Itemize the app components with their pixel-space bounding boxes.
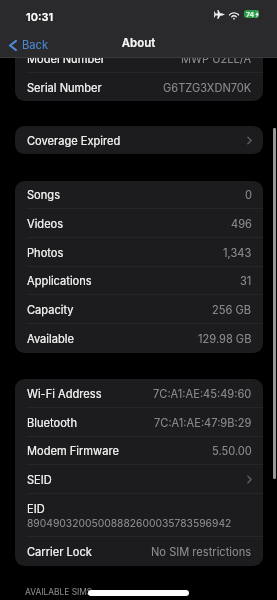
staticText: EID [27, 502, 45, 515]
button[interactable]: Photos [15, 238, 263, 266]
other: Airplane mode [214, 10, 225, 19]
staticText: 7C:A1:AE:45:49:60 [153, 387, 252, 400]
other: Battery 74 percent charging [244, 10, 259, 18]
staticText: SEID [27, 473, 52, 486]
staticText: No SIM restrictions [151, 545, 252, 558]
button[interactable]: SEID [15, 465, 263, 493]
staticText: Model Number [27, 52, 105, 65]
button[interactable]: Applications [15, 267, 263, 294]
staticText: 74 [246, 10, 255, 18]
button[interactable]: Back [6, 34, 55, 56]
button[interactable]: Modem Firmware [15, 437, 263, 464]
staticText: 0 [245, 188, 252, 201]
staticText: Modem Firmware [27, 444, 119, 457]
staticText: AVAILABLE SIMS [25, 587, 93, 597]
button[interactable]: Available [15, 324, 263, 353]
staticText: Coverage Expired [27, 134, 121, 147]
button[interactable]: Model Number [15, 45, 263, 72]
button[interactable]: Songs [15, 181, 263, 208]
staticText: 10:31 [26, 10, 54, 23]
staticText: Serial Number [27, 81, 102, 94]
staticText: 256 GB [212, 303, 252, 316]
staticText: 1,343 [223, 246, 252, 259]
staticText: Applications [27, 274, 92, 287]
staticText: Carrier Lock [27, 545, 92, 558]
staticText: 129.98 GB [198, 332, 252, 345]
other: Wi-Fi [230, 12, 238, 19]
staticText: Videos [27, 217, 64, 230]
button[interactable]: Serial Number [15, 73, 263, 101]
button[interactable]: Videos [15, 209, 263, 237]
button[interactable]: Carrier Lock [15, 537, 263, 566]
staticText: About [0, 36, 277, 50]
staticText: 31 [240, 274, 252, 287]
staticText: Bluetooth [27, 416, 77, 429]
button[interactable]: Coverage Expired [15, 126, 263, 154]
button[interactable]: Wi-Fi Address [15, 379, 263, 407]
staticText: MWP U2LL/A [181, 52, 252, 65]
staticText: 496 [231, 217, 252, 230]
button[interactable]: Bluetooth [15, 408, 263, 436]
button[interactable]: Capacity [15, 295, 263, 323]
staticText: Photos [27, 246, 64, 259]
staticText: 7C:A1:AE:47:9B:29 [154, 416, 252, 429]
staticText: Available [27, 332, 74, 345]
staticText: 89049032005008882600035783596942 [27, 517, 232, 529]
staticText: Songs [27, 188, 60, 201]
staticText: Back [22, 38, 49, 52]
staticText: Capacity [27, 303, 74, 316]
button[interactable]: EID [15, 494, 263, 536]
staticText: G6TZG3XDN70K [163, 81, 252, 94]
staticText: Wi-Fi Address [27, 387, 102, 400]
staticText: 5.50.00 [212, 444, 252, 457]
